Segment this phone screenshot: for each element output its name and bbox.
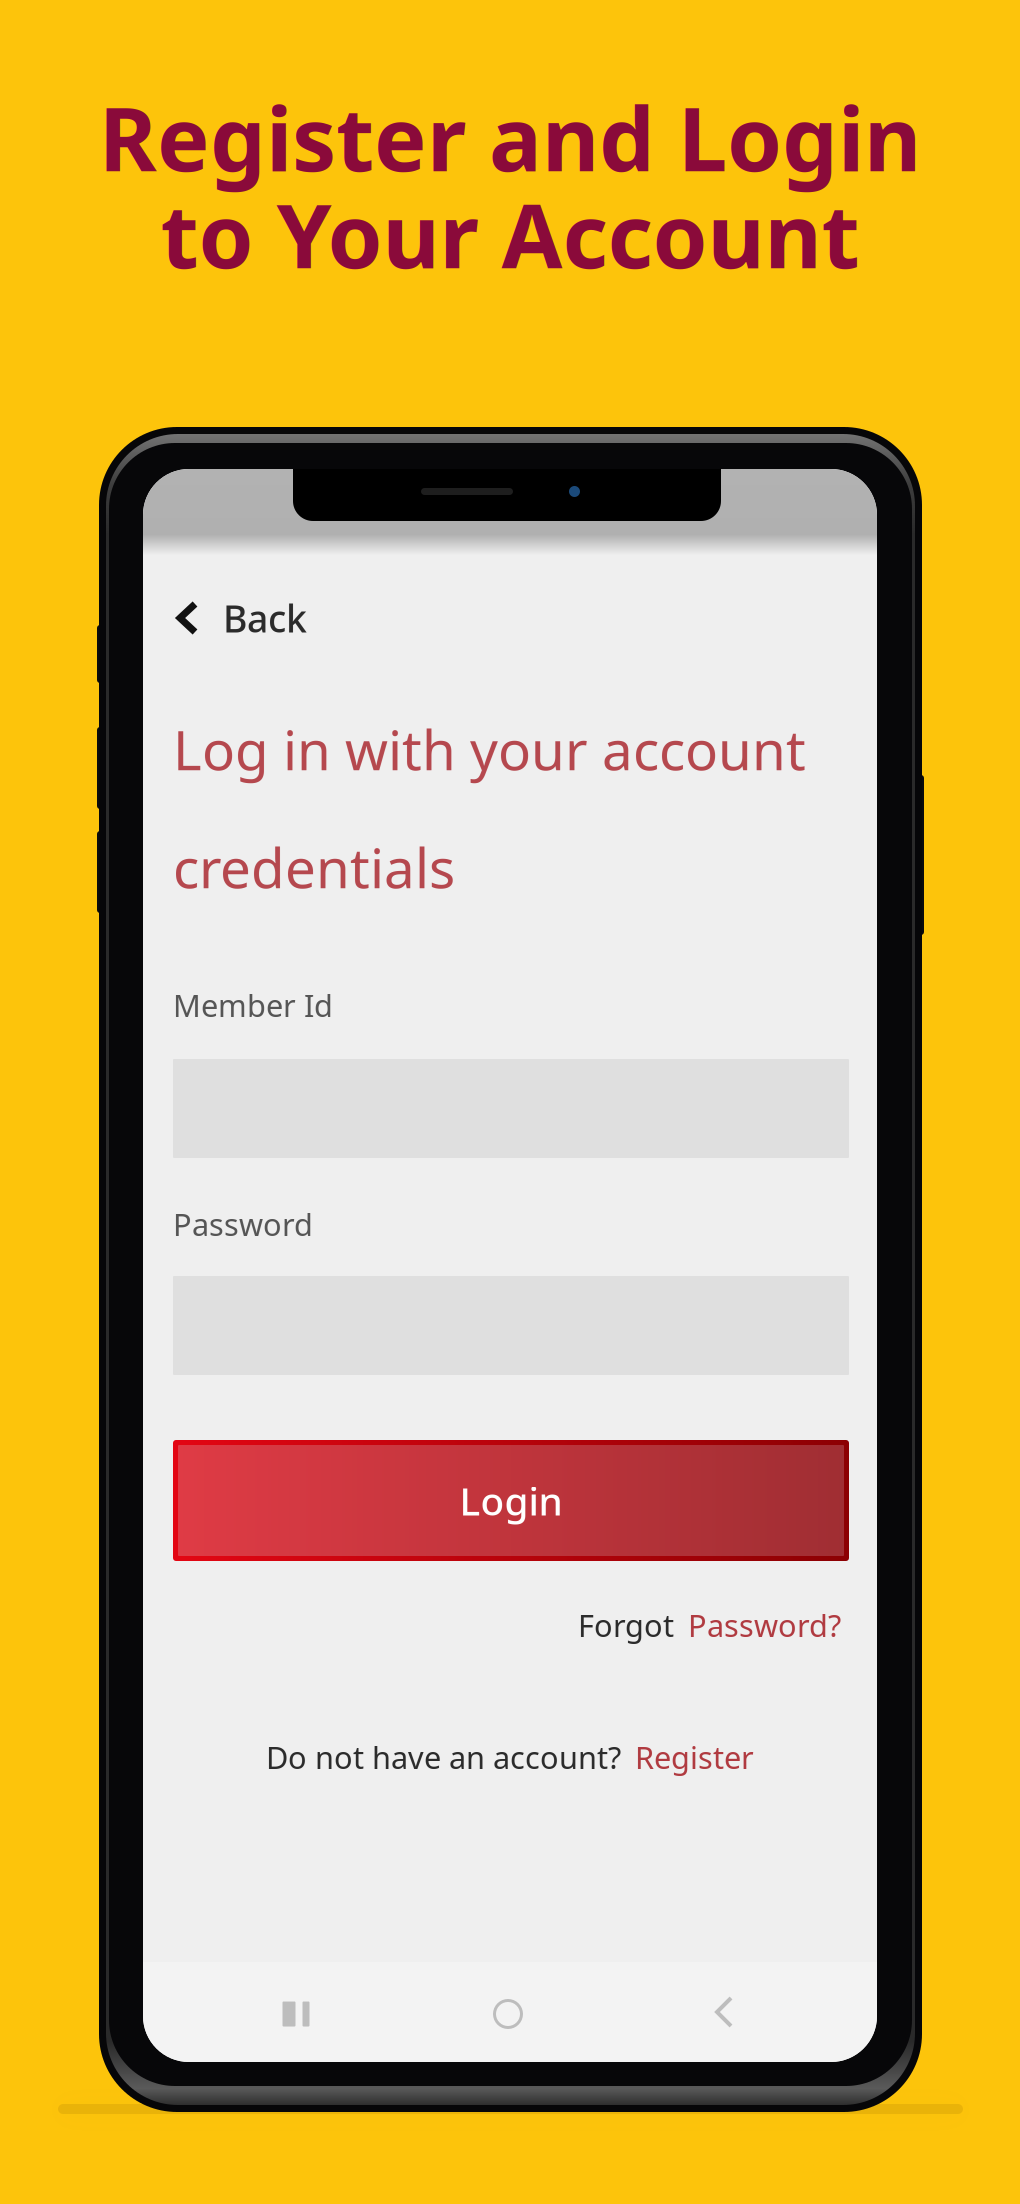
- staticText: Password: [173, 1204, 313, 1244]
- staticText: Register: [635, 1737, 754, 1777]
- staticText: Member Id: [173, 985, 333, 1025]
- button[interactable]: Back: [143, 585, 373, 651]
- button[interactable]: Back: [670, 1974, 780, 2050]
- staticText: Password?: [688, 1605, 841, 1645]
- staticText: Register and Login: [99, 79, 921, 195]
- staticText: Forgot: [578, 1605, 674, 1645]
- staticText: Do not have an account?: [266, 1737, 621, 1777]
- staticText: Back: [223, 593, 307, 643]
- staticText: Login: [459, 1475, 562, 1526]
- button[interactable]: Recent apps: [241, 1976, 351, 2052]
- staticText: to Your Account: [160, 176, 859, 292]
- staticText: Log in with your account: [173, 713, 806, 785]
- staticText: credentials: [173, 831, 455, 903]
- button[interactable]: Forgot: [173, 1607, 841, 1643]
- button[interactable]: Home: [453, 1976, 563, 2052]
- button[interactable]: Do not have an account?: [143, 1739, 877, 1775]
- button[interactable]: Login: [173, 1440, 849, 1561]
